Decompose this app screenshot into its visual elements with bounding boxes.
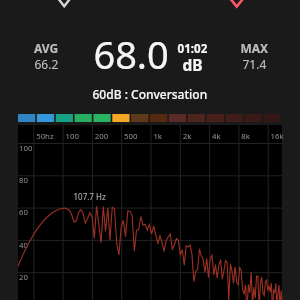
- button[interactable]: Sound meter: [0, 0, 300, 300]
